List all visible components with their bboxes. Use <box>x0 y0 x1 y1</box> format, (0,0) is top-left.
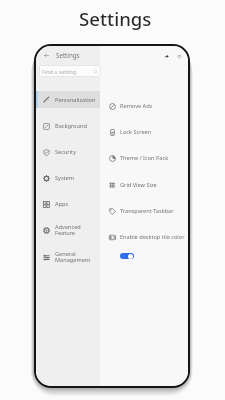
staticText: Remove Ads <box>120 102 153 110</box>
staticText: Theme / Icon Pack <box>120 154 169 162</box>
button[interactable]: Find a setting <box>39 65 101 77</box>
button[interactable]: Transparent Taskbar <box>100 200 188 222</box>
staticText: Apps <box>55 200 69 208</box>
button[interactable]: Remove Ads <box>100 95 188 117</box>
button[interactable]: Enable desktop tile color toggle <box>120 253 134 259</box>
staticText: Settings <box>79 6 152 31</box>
staticText: Personalization <box>55 96 96 104</box>
staticText: Background <box>55 122 87 130</box>
staticText: Enable desktop tile color <box>120 233 185 241</box>
staticText: Find a setting <box>42 68 77 75</box>
button[interactable]: Apps <box>36 193 100 215</box>
staticText: Settings <box>56 51 80 59</box>
button[interactable]: Grid View Size <box>100 174 188 196</box>
button[interactable]: General Management <box>36 246 100 268</box>
staticText: Transparent Taskbar <box>120 207 174 215</box>
button[interactable]: Lock Screen <box>100 121 188 143</box>
button[interactable]: Background <box>36 115 100 137</box>
button[interactable]: Personalization <box>36 91 100 108</box>
button[interactable]: Enable desktop tile color <box>100 226 188 248</box>
button[interactable]: System <box>36 167 100 189</box>
button[interactable]: Security <box>36 141 100 163</box>
button[interactable]: Theme / Icon Pack <box>100 147 188 169</box>
staticText: General Management <box>55 250 91 264</box>
staticText: Advanced Feature <box>55 223 81 237</box>
button[interactable]: Back <box>41 50 51 60</box>
button[interactable]: Share <box>161 51 171 61</box>
staticText: System <box>55 174 75 182</box>
button[interactable]: Favorite <box>174 51 184 61</box>
staticText: Grid View Size <box>120 181 157 189</box>
staticText: Lock Screen <box>120 128 152 136</box>
staticText: Security <box>55 148 76 156</box>
button[interactable]: Advanced Feature <box>36 219 100 241</box>
